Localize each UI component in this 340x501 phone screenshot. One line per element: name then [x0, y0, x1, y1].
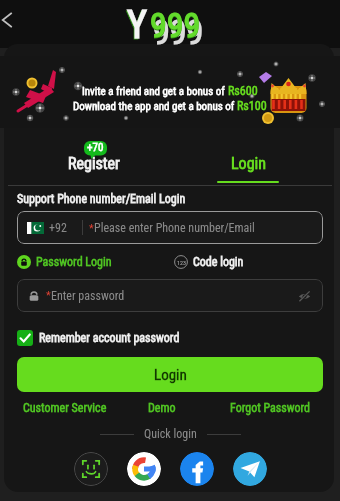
staticText: Rs100: [237, 99, 267, 113]
button[interactable]: Login: [180, 130, 316, 186]
staticText: Y: [126, 4, 146, 49]
button[interactable]: Telegram login: [233, 452, 267, 486]
staticText: 999: [153, 12, 204, 52]
button[interactable]: Remember account password: [17, 330, 180, 346]
staticText: *: [46, 289, 51, 302]
staticText: Support Phone number/Email Login: [17, 192, 186, 206]
button[interactable]: +92: [17, 211, 323, 244]
button[interactable]: Customer Service: [23, 401, 107, 415]
staticText: Login: [231, 154, 266, 173]
staticText: 999: [150, 6, 201, 46]
button[interactable]: Forgot Password: [230, 401, 311, 415]
staticText: Quick login: [144, 427, 197, 441]
button[interactable]: Face login: [74, 452, 108, 486]
button[interactable]: *: [17, 279, 323, 312]
staticText: Y: [127, 3, 147, 48]
button[interactable]: Back: [0, 8, 19, 32]
staticText: 123: [177, 259, 186, 266]
staticText: *: [89, 222, 94, 235]
staticText: Please enter Phone number/Email: [94, 221, 255, 235]
staticText: Code login: [193, 255, 244, 269]
staticText: 999: [150, 5, 201, 45]
staticText: Password Login: [36, 255, 112, 269]
button[interactable]: Register: [26, 130, 162, 186]
staticText: +70: [87, 141, 104, 154]
staticText: Download the app and get a bonus of: [73, 100, 237, 113]
staticText: Enter password: [51, 289, 125, 303]
button[interactable]: Login: [17, 357, 323, 392]
button[interactable]: Demo: [148, 401, 176, 415]
button[interactable]: Google login: [127, 452, 161, 486]
button[interactable]: Password Login: [17, 255, 112, 269]
staticText: +92: [49, 221, 67, 235]
staticText: Login: [154, 366, 187, 384]
staticText: Rs600: [228, 84, 258, 98]
button[interactable]: 123: [174, 255, 244, 269]
button[interactable]: Facebook login: [180, 452, 214, 486]
staticText: Register: [68, 154, 120, 173]
staticText: Remember account password: [39, 331, 180, 345]
staticText: Invite a friend and get a bonus of: [82, 85, 228, 98]
button[interactable]: Show password: [295, 287, 313, 305]
